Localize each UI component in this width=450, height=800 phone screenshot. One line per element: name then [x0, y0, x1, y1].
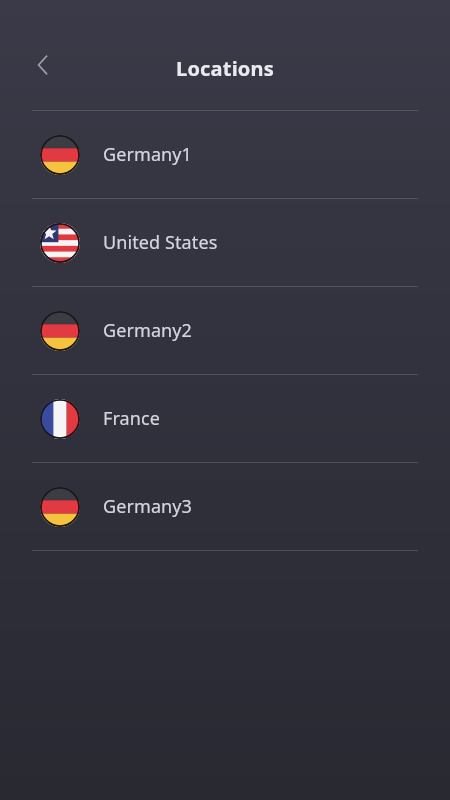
- button[interactable]: United States: [0, 199, 450, 286]
- staticText: France: [103, 406, 161, 431]
- button[interactable]: Germany3: [0, 463, 450, 550]
- button[interactable]: Germany1: [0, 111, 450, 198]
- button[interactable]: Back: [22, 44, 64, 86]
- button[interactable]: Germany2: [0, 287, 450, 374]
- staticText: Locations: [0, 55, 450, 82]
- staticText: Germany3: [103, 494, 193, 519]
- staticText: United States: [103, 230, 218, 255]
- staticText: Germany1: [103, 142, 193, 167]
- staticText: Germany2: [103, 318, 193, 343]
- button[interactable]: France: [0, 375, 450, 462]
